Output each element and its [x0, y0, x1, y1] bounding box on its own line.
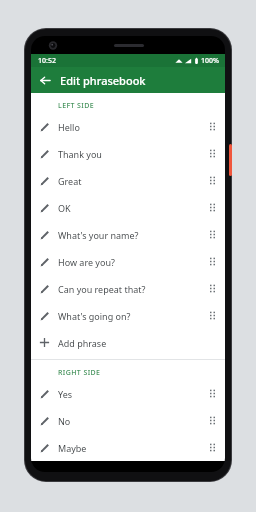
button[interactable]: Maybe	[31, 434, 225, 461]
staticText: RIGHT SIDE	[58, 368, 101, 378]
staticText: Thank you	[58, 148, 199, 160]
button[interactable]: Hello	[31, 113, 225, 140]
staticText: 100%	[201, 56, 219, 66]
button[interactable]: Yes	[31, 380, 225, 407]
staticText: Add phrase	[58, 337, 199, 349]
button[interactable]: OK	[31, 194, 225, 221]
staticText: Yes	[58, 388, 199, 400]
staticText: Can you repeat that?	[58, 283, 199, 295]
staticText: LEFT SIDE	[58, 101, 95, 111]
button[interactable]: No	[31, 407, 225, 434]
button[interactable]: What's your name?	[31, 221, 225, 248]
button[interactable]: Thank you	[31, 140, 225, 167]
button[interactable]: How are you?	[31, 248, 225, 275]
staticText: Maybe	[58, 442, 199, 454]
button[interactable]: What's going on?	[31, 302, 225, 329]
staticText: How are you?	[58, 256, 199, 268]
staticText: What's your name?	[58, 229, 199, 241]
staticText: Great	[58, 175, 199, 187]
staticText: OK	[58, 202, 199, 214]
button[interactable]: Back	[35, 70, 55, 90]
staticText: 10:52	[38, 56, 56, 66]
button[interactable]: Great	[31, 167, 225, 194]
staticText: No	[58, 415, 199, 427]
button[interactable]: Can you repeat that?	[31, 275, 225, 302]
staticText: Edit phrasebook	[60, 73, 146, 88]
staticText: What's going on?	[58, 310, 199, 322]
button[interactable]: Add phrase	[31, 329, 225, 356]
staticText: Hello	[58, 121, 199, 133]
